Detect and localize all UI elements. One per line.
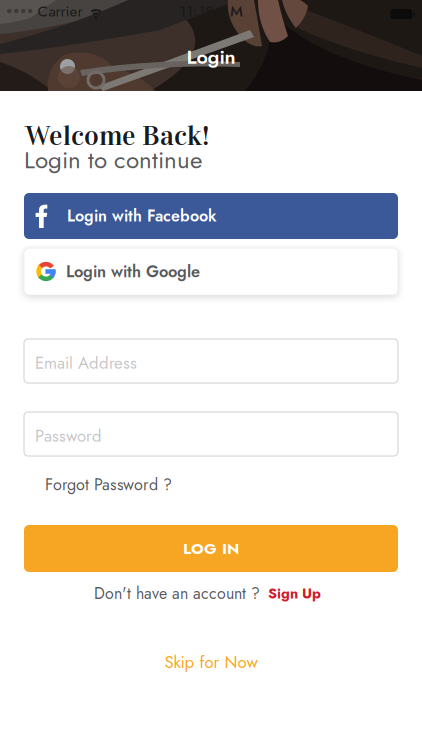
staticText: Welcome Back!	[25, 118, 209, 153]
staticText: Login to continue	[24, 142, 202, 177]
button[interactable]: LOG IN	[24, 525, 398, 572]
staticText: Sign Up	[268, 583, 321, 604]
staticText: 11:18 AM	[179, 0, 243, 22]
button[interactable]: Login with Facebook	[24, 193, 398, 239]
button[interactable]: Forgot Password ?	[45, 473, 172, 496]
staticText: Don't have an account ?	[94, 582, 260, 605]
staticText: Email Address	[35, 351, 137, 375]
button[interactable]: Sign Up	[268, 583, 321, 604]
staticText: Carrier	[37, 0, 82, 22]
button[interactable]: Skip for Now	[164, 650, 257, 674]
staticText: Skip for Now	[164, 650, 257, 674]
button[interactable]: Login with Google	[24, 248, 398, 295]
staticText: Login	[186, 42, 235, 71]
staticText: Login with Facebook	[67, 204, 217, 227]
staticText: LOG IN	[183, 537, 239, 560]
staticText: Forgot Password ?	[45, 473, 172, 496]
staticText: Login with Google	[66, 260, 200, 283]
staticText: Password	[35, 424, 102, 448]
